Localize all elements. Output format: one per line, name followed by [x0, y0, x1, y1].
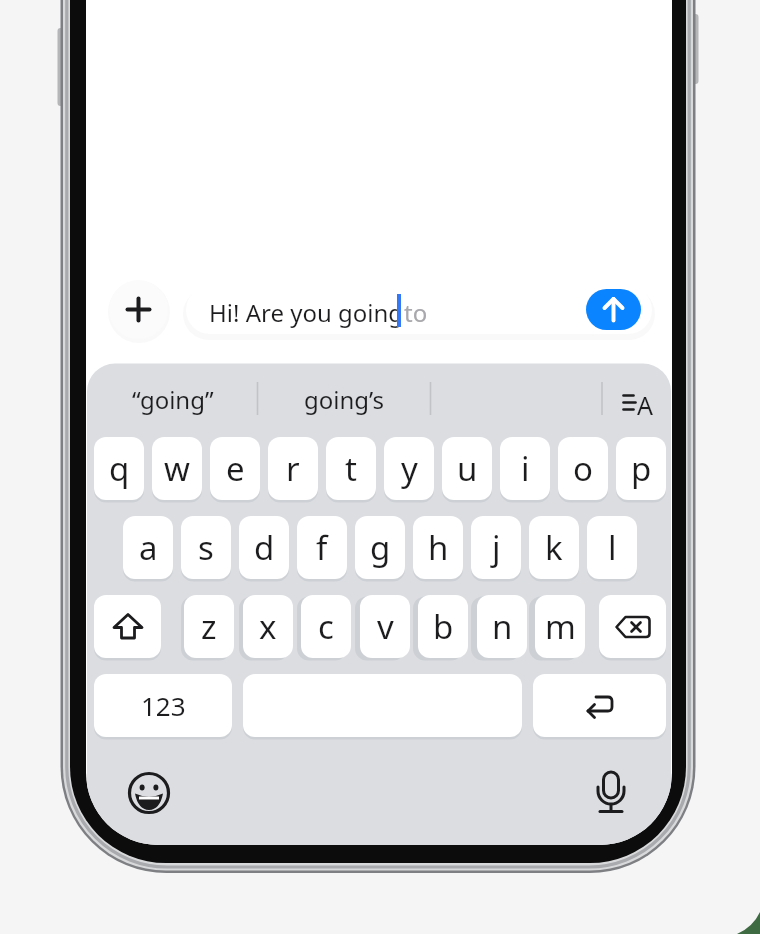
staticText: n [492, 604, 513, 649]
button[interactable]: “going” [100, 376, 245, 422]
button[interactable]: r [268, 437, 318, 500]
button[interactable]: g [355, 516, 405, 579]
button[interactable]: x [243, 595, 293, 658]
button[interactable]: b [418, 595, 468, 658]
staticText: l [608, 525, 617, 570]
button[interactable]: j [471, 516, 521, 579]
button[interactable]: e [210, 437, 260, 500]
staticText: p [631, 446, 652, 491]
staticText: f [316, 525, 328, 570]
staticText: to [404, 296, 428, 329]
button[interactable]: l [587, 516, 637, 579]
button[interactable]: f [297, 516, 347, 579]
staticText: m [545, 604, 576, 649]
button[interactable]: u [442, 437, 492, 500]
button[interactable]: 123 [94, 674, 232, 737]
button[interactable] [94, 595, 161, 658]
button[interactable]: Hi! Are you going [186, 286, 652, 334]
staticText: o [573, 446, 593, 491]
button[interactable] [533, 674, 666, 737]
button[interactable]: i [500, 437, 550, 500]
staticText: y [401, 446, 418, 491]
staticText: k [545, 525, 563, 570]
button[interactable]: a [123, 516, 173, 579]
staticText: d [254, 525, 275, 570]
button[interactable] [109, 280, 168, 339]
staticText: u [457, 446, 478, 491]
staticText: 123 [141, 688, 186, 723]
button[interactable]: k [529, 516, 579, 579]
button[interactable]: m [535, 595, 585, 658]
button[interactable]: n [477, 595, 527, 658]
button[interactable]: d [239, 516, 289, 579]
button[interactable]: w [152, 437, 202, 500]
button[interactable]: p [616, 437, 666, 500]
staticText: x [259, 604, 277, 649]
staticText: b [433, 604, 454, 649]
button[interactable]: z [184, 595, 234, 658]
staticText: t [345, 446, 357, 491]
staticText: a [139, 525, 158, 570]
staticText: j [492, 525, 501, 570]
staticText: s [198, 525, 214, 570]
button[interactable] [586, 289, 641, 330]
button[interactable]: v [360, 595, 410, 658]
staticText: A [637, 388, 653, 422]
staticText: c [318, 604, 334, 649]
staticText: w [164, 446, 190, 491]
staticText: going’s [304, 383, 385, 416]
staticText: i [521, 446, 530, 491]
button[interactable]: h [413, 516, 463, 579]
staticText: q [109, 446, 130, 491]
button[interactable] [599, 595, 666, 658]
staticText: e [226, 446, 245, 491]
staticText: z [201, 604, 217, 649]
button[interactable] [243, 674, 522, 737]
button[interactable]: c [301, 595, 351, 658]
button[interactable]: s [181, 516, 231, 579]
staticText: v [377, 604, 394, 649]
button[interactable]: y [384, 437, 434, 500]
staticText: g [370, 525, 391, 570]
staticText: Hi! Are you going [209, 296, 404, 329]
staticText: h [428, 525, 449, 570]
button[interactable]: going’s [272, 376, 417, 422]
button[interactable] [127, 771, 171, 815]
button[interactable]: o [558, 437, 608, 500]
button[interactable] [590, 766, 632, 818]
staticText: “going” [132, 383, 214, 416]
staticText: r [286, 446, 300, 491]
button[interactable]: t [326, 437, 376, 500]
button[interactable]: q [94, 437, 144, 500]
